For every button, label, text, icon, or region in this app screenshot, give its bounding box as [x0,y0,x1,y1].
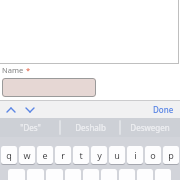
button[interactable]: r [55,146,71,164]
staticText: p [168,149,174,161]
button[interactable] [137,169,153,180]
button[interactable]: w [19,146,35,164]
staticText: q [6,149,12,161]
staticText: t [79,149,83,161]
staticText: u [114,149,120,161]
button[interactable] [155,169,171,180]
staticText: * [26,65,31,75]
staticText: Name [2,65,24,75]
button[interactable]: t [73,146,89,164]
staticText: i [134,149,137,161]
button[interactable] [8,169,25,180]
button[interactable]: q [1,146,17,164]
button[interactable] [27,169,44,180]
staticText: o [150,149,156,161]
button[interactable]: p [163,146,179,164]
button[interactable]: Previous field [3,103,19,117]
button[interactable] [83,169,99,180]
button[interactable] [2,78,96,97]
staticText: Deshalb [75,122,106,133]
staticText: w [23,149,31,161]
button[interactable]: Deshalb [60,118,120,137]
button[interactable] [65,169,81,180]
button[interactable] [46,169,63,180]
button[interactable]: e [37,146,53,164]
staticText: r [61,149,65,161]
staticText: y [97,149,102,161]
staticText: Done [153,104,174,115]
button[interactable]: i [127,146,143,164]
staticText: e [42,149,48,161]
staticText: Deswegen [130,122,170,133]
button[interactable] [119,169,135,180]
button[interactable]: Deswegen [120,118,180,137]
button[interactable]: u [109,146,125,164]
button[interactable]: y [91,146,107,164]
staticText: "Des" [20,122,41,133]
button[interactable]: Next field [22,103,38,117]
button[interactable] [101,169,117,180]
button[interactable]: o [145,146,161,164]
button[interactable]: "Des" [0,118,60,137]
button[interactable] [0,0,179,64]
button[interactable]: Done [153,104,174,115]
